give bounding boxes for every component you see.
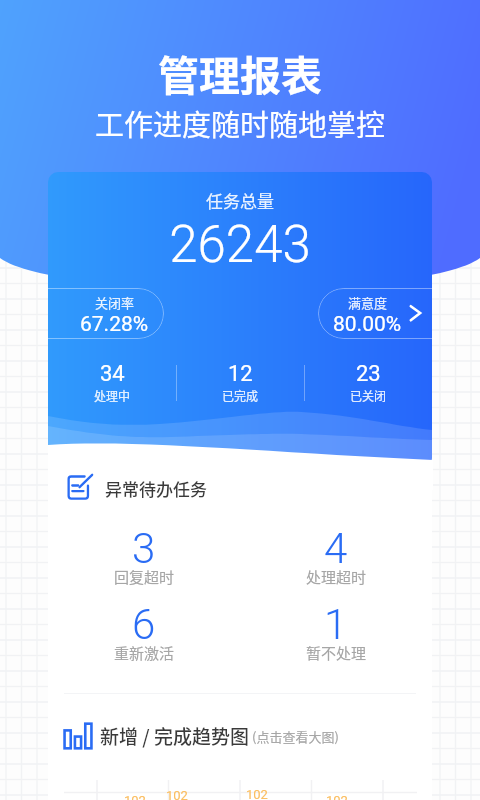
- staticText: 回复超时: [114, 566, 175, 588]
- staticText: 4: [324, 524, 348, 573]
- button[interactable]: 23: [305, 361, 432, 404]
- button[interactable]: 4: [240, 524, 432, 595]
- staticText: 26243: [48, 215, 432, 275]
- staticText: 处理超时: [306, 566, 367, 588]
- staticText: 12: [228, 361, 253, 387]
- staticText: 34: [100, 361, 125, 387]
- staticText: 3: [132, 524, 156, 573]
- button[interactable]: 异常待办任务: [65, 474, 207, 502]
- staticText: 23: [356, 361, 381, 387]
- staticText: 新增 / 完成趋势图: [100, 722, 249, 750]
- button[interactable]: 任务总量: [48, 172, 432, 468]
- staticText: 管理报表: [0, 43, 480, 102]
- staticText: 102: [124, 793, 146, 800]
- staticText: 处理中: [94, 387, 131, 404]
- staticText: 暂不处理: [306, 642, 367, 664]
- button[interactable]: 12: [177, 361, 304, 404]
- staticText: 67.28%: [80, 312, 149, 337]
- button[interactable]: 满意度: [318, 288, 432, 339]
- button[interactable]: 3: [48, 524, 240, 595]
- staticText: 任务总量: [48, 188, 432, 213]
- staticText: 102: [166, 788, 188, 800]
- button[interactable]: 6: [48, 600, 240, 671]
- staticText: 满意度: [348, 293, 388, 312]
- staticText: 1: [324, 600, 348, 649]
- other: 异常待办任务: [65, 474, 93, 502]
- button[interactable]: 1: [240, 600, 432, 671]
- staticText: 80.00%: [333, 312, 402, 337]
- staticText: 重新激活: [114, 642, 175, 664]
- button[interactable]: 关闭率: [48, 288, 164, 339]
- staticText: 已关闭: [350, 387, 387, 404]
- staticText: 已完成: [222, 387, 259, 404]
- staticText: 异常待办任务: [105, 476, 207, 501]
- button[interactable]: 34: [48, 361, 176, 404]
- staticText: 工作进度随时随地掌控: [0, 102, 480, 144]
- button[interactable]: 新增 / 完成趋势图: [64, 722, 339, 750]
- staticText: 102: [326, 793, 348, 800]
- staticText: (点击查看大图): [252, 727, 339, 746]
- other: 查看满意度详情: [403, 300, 429, 326]
- staticText: 102: [246, 787, 268, 800]
- staticText: 6: [132, 600, 156, 649]
- staticText: 关闭率: [95, 293, 135, 312]
